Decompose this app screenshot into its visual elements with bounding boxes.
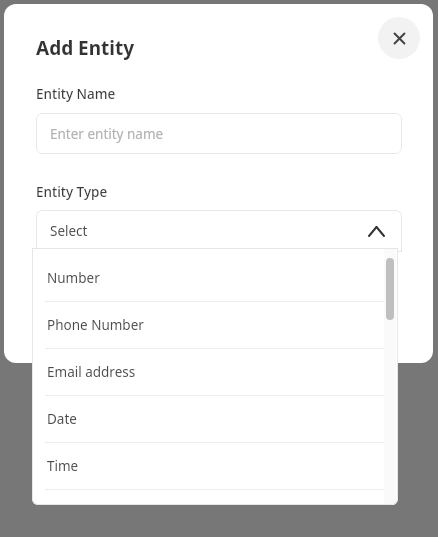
button[interactable]: Close: [378, 17, 420, 59]
staticText: Add Entity: [36, 35, 135, 61]
button[interactable]: Phone Number: [32, 302, 398, 348]
staticText: Date: [47, 410, 77, 428]
staticText: Entity Name: [36, 85, 116, 103]
staticText: Time: [47, 457, 79, 475]
staticText: Enter entity name: [50, 125, 164, 143]
staticText: Number: [47, 269, 100, 287]
staticText: Select: [50, 222, 88, 240]
button[interactable]: Date: [32, 396, 398, 442]
button[interactable]: Entity Type selector, expanded: [36, 210, 402, 252]
button[interactable]: Email address: [32, 349, 398, 395]
button[interactable]: Time: [32, 443, 398, 489]
staticText: Phone Number: [47, 316, 144, 334]
button[interactable]: Enter entity name: [36, 113, 402, 154]
staticText: Entity Type: [36, 183, 108, 201]
staticText: Email address: [47, 363, 136, 381]
button[interactable]: Number: [32, 255, 398, 301]
